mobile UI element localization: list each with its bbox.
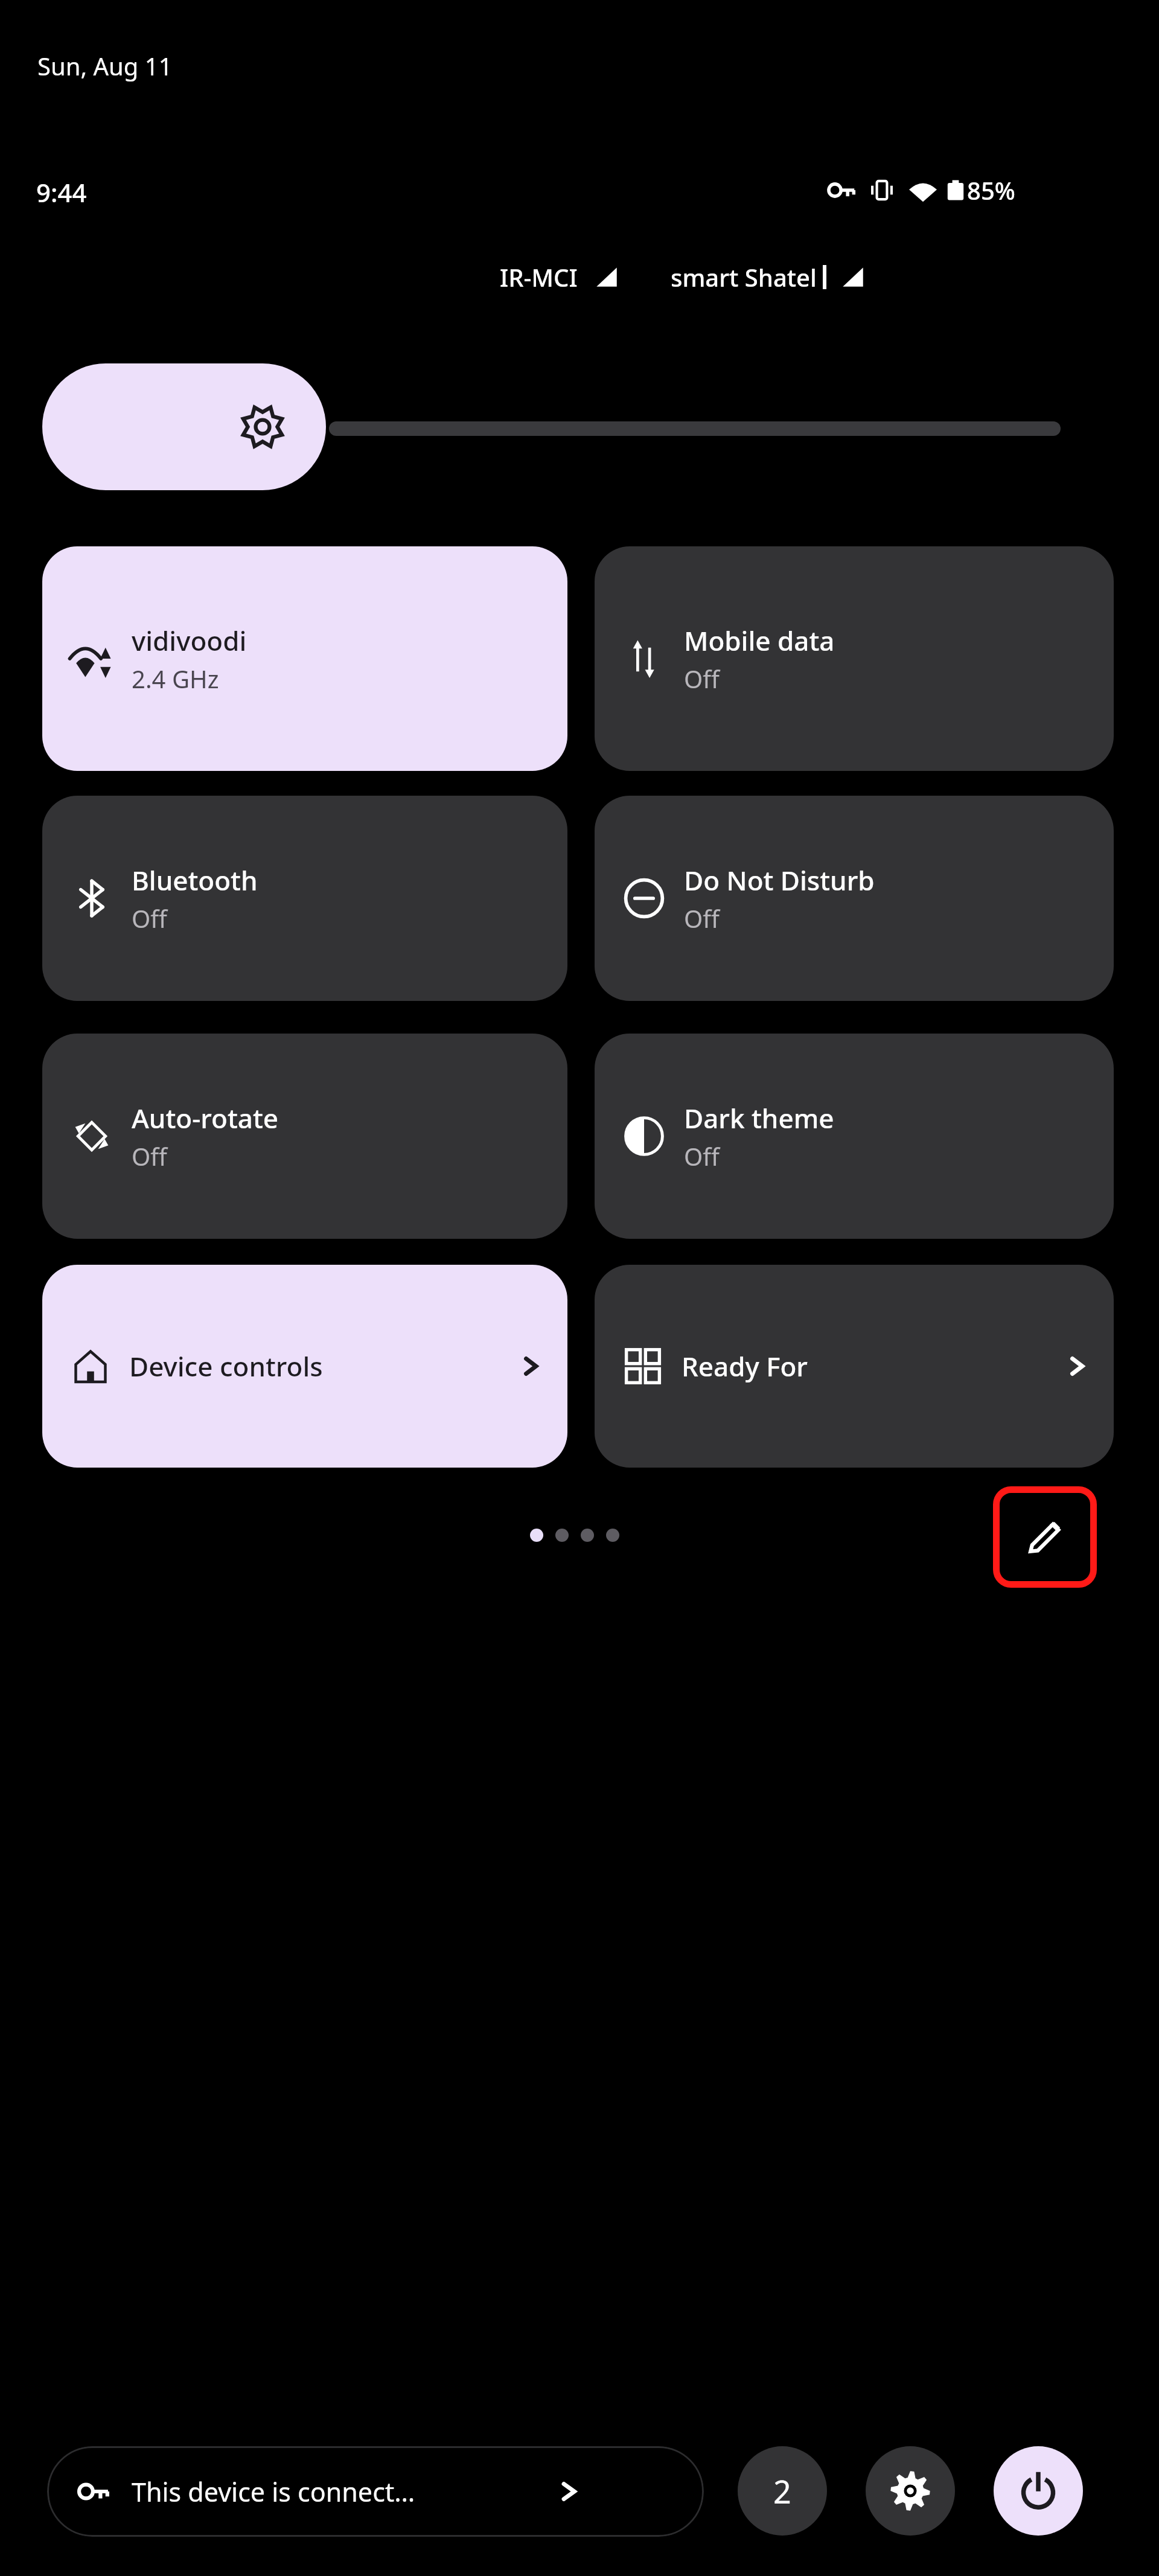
staticText: vidivoodi — [132, 622, 247, 659]
staticText: Dark theme — [684, 1100, 834, 1136]
staticText: Bluetooth — [132, 862, 258, 898]
button[interactable]: Do Not Disturb — [595, 796, 1114, 1001]
staticText: Mobile data — [684, 622, 835, 659]
button[interactable]: Device controls — [42, 1265, 567, 1468]
staticText: Off — [684, 1140, 720, 1172]
staticText: 9:44 — [36, 175, 87, 209]
button[interactable]: Edit tiles — [993, 1486, 1097, 1588]
staticText: 2.4 GHz — [132, 662, 219, 695]
button[interactable]: Brightness — [42, 363, 326, 490]
button[interactable]: vidivoodi — [42, 546, 567, 771]
staticText: Auto-rotate — [132, 1100, 279, 1136]
button[interactable]: This device is connect… — [47, 2446, 704, 2537]
staticText: Sun, Aug 11 — [37, 50, 173, 82]
button[interactable]: Settings — [866, 2446, 955, 2536]
staticText: Device controls — [129, 1348, 520, 1384]
staticText: Ready For — [682, 1348, 1067, 1384]
staticText: This device is connect… — [132, 2474, 554, 2510]
staticText: 85% — [967, 174, 1015, 206]
staticText: Do Not Disturb — [684, 862, 875, 898]
staticText: Off — [684, 902, 720, 935]
button[interactable]: 2 notifications — [738, 2446, 827, 2536]
button[interactable]: Auto-rotate — [42, 1034, 567, 1239]
button[interactable]: Ready For — [595, 1265, 1114, 1468]
button[interactable]: Power — [994, 2446, 1083, 2536]
staticText: Off — [132, 1140, 167, 1172]
staticText: Off — [132, 902, 167, 935]
staticText: Off — [684, 662, 720, 695]
button[interactable]: Bluetooth — [42, 796, 567, 1001]
staticText: 2 — [773, 2470, 791, 2513]
staticText: smart Shatel — [671, 261, 817, 293]
button[interactable]: Mobile data — [595, 546, 1114, 771]
staticText: IR-MCI — [500, 261, 578, 293]
button[interactable]: Dark theme — [595, 1034, 1114, 1239]
